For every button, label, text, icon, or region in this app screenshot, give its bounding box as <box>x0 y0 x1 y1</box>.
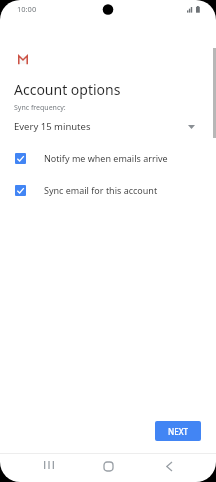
button[interactable]: Sync email for this account <box>0 180 216 200</box>
staticText: Notify me when emails arrive <box>44 152 168 164</box>
staticText: Account options <box>14 80 121 99</box>
staticText: Sync frequency: <box>14 103 66 113</box>
staticText: Every 15 minutes <box>14 120 91 133</box>
staticText: 10:00 <box>17 4 37 14</box>
button[interactable]: Back <box>154 452 183 480</box>
staticText: Sync email for this account <box>44 184 158 196</box>
staticText: NEXT <box>168 426 189 437</box>
button[interactable]: NEXT <box>155 421 201 441</box>
button[interactable]: Every 15 minutes <box>0 118 216 135</box>
button[interactable]: Notify me when emails arrive <box>0 148 216 168</box>
button[interactable]: Recent apps <box>34 451 63 479</box>
button[interactable]: Home <box>94 452 123 480</box>
